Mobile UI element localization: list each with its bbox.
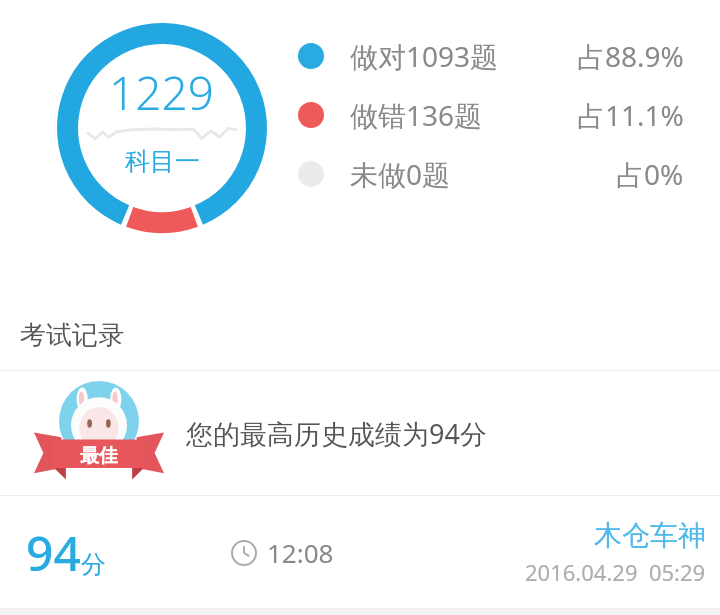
staticText: 您的最高历史成绩为94分 [186,415,487,452]
staticText: 94 [26,520,81,585]
button[interactable]: 做对1093题 [298,37,696,75]
staticText: 做对1093题 [350,37,499,75]
staticText: 未做0题 [350,155,451,193]
staticText: 占0% [616,155,684,193]
staticText: 1229 [109,61,215,124]
staticText: 12:08 [267,535,334,570]
button[interactable]: 未做0题 [298,155,696,193]
staticText: 考试记录 [20,319,124,352]
button[interactable]: 94 [0,496,720,608]
staticText: 木仓车神 [594,518,706,553]
staticText: 2016.04.29 05:29 [525,557,706,587]
button[interactable]: 做错136题 [298,96,696,134]
staticText: 做错136题 [350,96,483,134]
staticText: 占11.1% [577,96,684,134]
other: 最佳成绩徽章 [34,383,164,483]
button[interactable]: 最佳成绩徽章 [0,371,720,495]
staticText: 最佳 [80,444,118,468]
staticText: 占88.9% [577,37,684,75]
other: 用时 [231,540,257,566]
staticText: 科目一 [125,146,200,177]
staticText: 分 [81,549,106,580]
